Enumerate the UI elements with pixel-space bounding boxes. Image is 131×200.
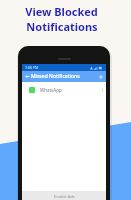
button[interactable]: Back <box>22 71 106 82</box>
button[interactable]: WhatsApp <box>22 82 106 97</box>
staticText: 1:06 PM <box>25 65 39 70</box>
button[interactable]: Settings <box>98 74 103 79</box>
other: Back <box>25 74 30 79</box>
staticText: Missed Notifications <box>31 73 80 80</box>
staticText: WhatsApp <box>40 87 62 93</box>
staticText: Notifications <box>26 19 98 34</box>
staticText: View Blocked <box>25 4 98 19</box>
staticText: Enable Ads <box>54 194 75 199</box>
button[interactable]: More options <box>99 87 105 93</box>
